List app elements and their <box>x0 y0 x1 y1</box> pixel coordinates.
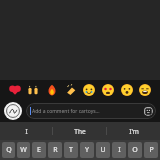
button[interactable]: E <box>32 142 46 158</box>
button[interactable]: Stickers <box>143 106 153 116</box>
button[interactable]: Y <box>80 142 94 158</box>
staticText: Add a comment for cartoys... <box>32 108 143 115</box>
button[interactable]: The <box>53 122 106 140</box>
staticText: U <box>100 145 106 155</box>
button[interactable]: Crying reaction <box>81 82 97 98</box>
staticText: I <box>118 145 121 155</box>
staticText: Y <box>85 145 89 155</box>
staticText: T <box>69 145 73 155</box>
staticText: E <box>37 145 41 155</box>
staticText: W <box>20 145 27 155</box>
staticText: The <box>74 127 86 136</box>
button[interactable]: Clap reaction <box>63 82 79 98</box>
staticText: P <box>149 145 154 155</box>
staticText: I <box>25 127 28 136</box>
button[interactable]: Add a comment for cartoys... <box>26 103 156 119</box>
button[interactable]: P <box>144 142 158 158</box>
staticText: I'm <box>129 127 139 136</box>
button[interactable]: T <box>64 142 78 158</box>
button[interactable]: R <box>48 142 62 158</box>
staticText: Q <box>6 145 12 155</box>
button[interactable]: Q <box>2 142 15 158</box>
staticText: R <box>53 145 58 155</box>
button[interactable]: I'm <box>107 122 160 140</box>
button[interactable]: Fire reaction <box>44 82 60 98</box>
button[interactable]: Heart eyes reaction <box>100 82 116 98</box>
button[interactable]: I <box>0 122 52 140</box>
button[interactable]: W <box>17 142 30 158</box>
staticText: O <box>132 145 138 155</box>
button[interactable]: I <box>112 142 126 158</box>
button[interactable]: Laughing reaction <box>137 82 153 98</box>
button[interactable]: U <box>96 142 110 158</box>
button[interactable]: O <box>128 142 142 158</box>
button[interactable]: Raised hands reaction <box>25 82 41 98</box>
button[interactable]: Your profile <box>4 102 22 120</box>
button[interactable]: Heart reaction <box>7 82 23 98</box>
button[interactable]: Surprised reaction <box>119 82 135 98</box>
